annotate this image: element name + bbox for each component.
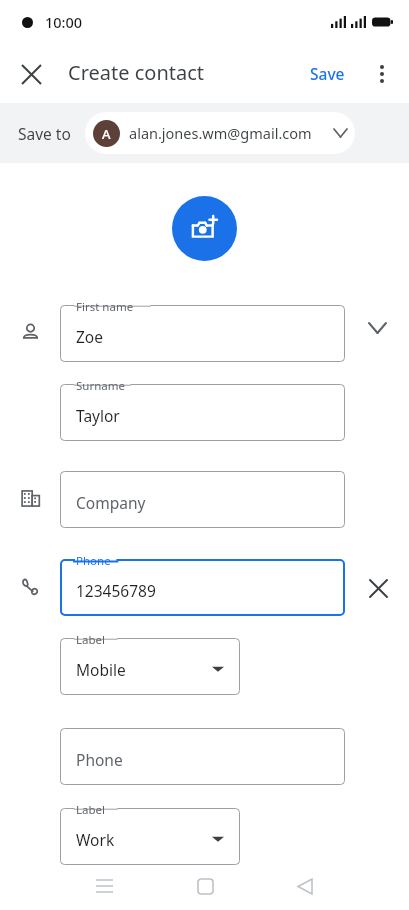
staticText: Zoe [76,326,103,347]
staticText: Save [310,63,345,84]
button[interactable]: Home [185,866,225,906]
button[interactable]: Phone [60,559,345,616]
button[interactable]: More options [361,53,403,95]
staticText: Company [76,492,146,513]
staticText: alan.jones.wm@gmail.com [129,123,312,143]
staticText: Surname [76,378,125,394]
button[interactable]: Company [60,471,345,528]
staticText: Label [76,802,106,818]
button[interactable]: Label [60,808,240,865]
staticText: A [102,125,111,143]
button[interactable]: A [85,112,355,154]
staticText: First name [76,299,134,315]
staticText: Work [76,829,115,850]
button[interactable]: Close [9,52,53,96]
staticText: 10:00 [45,12,83,32]
staticText: Phone [76,553,111,569]
button[interactable]: First name [60,305,345,362]
button[interactable]: Add photo [172,196,237,261]
button[interactable]: Back [285,866,325,906]
button[interactable]: Surname [60,384,345,441]
button[interactable]: Phone [60,728,345,785]
button[interactable]: Save [302,57,353,90]
staticText: Create contact [68,59,205,86]
button[interactable]: Label [60,638,240,695]
staticText: 123456789 [76,580,156,601]
button[interactable]: Expand name fields [362,313,392,343]
staticText: Taylor [76,405,120,426]
staticText: Mobile [76,659,126,680]
staticText: Phone [76,749,123,770]
button[interactable]: Clear phone number [363,573,393,603]
staticText: Save to [18,123,71,144]
button[interactable]: Recent apps [84,866,124,906]
staticText: Label [76,632,106,648]
